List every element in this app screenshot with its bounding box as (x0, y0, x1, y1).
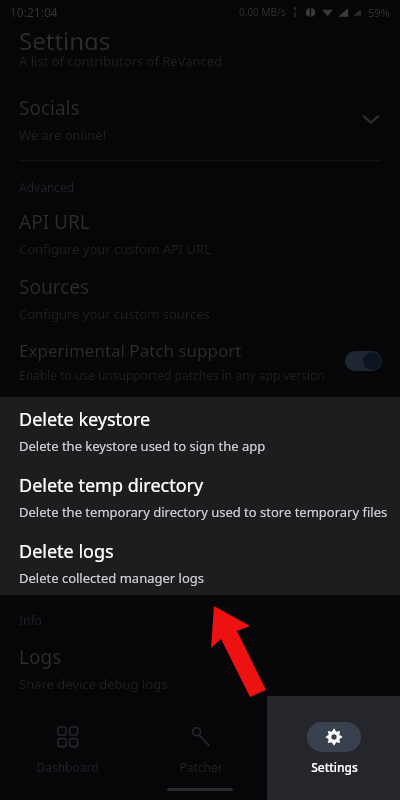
staticText: Enable to use unsupported patches in any… (19, 367, 325, 383)
staticText: Delete keystore (19, 407, 151, 432)
staticText: Patcher (179, 759, 223, 775)
staticText: Sources (19, 274, 90, 300)
button[interactable]: Patcher (134, 696, 267, 800)
staticText: Dashboard (36, 759, 99, 775)
staticText: Delete temp directory (19, 473, 204, 498)
staticText: Configure your custom sources (19, 305, 210, 323)
button[interactable]: Dashboard (0, 696, 134, 800)
staticText: A list of contributors of ReVanced (19, 52, 223, 70)
staticText: Socials (19, 95, 80, 121)
staticText: Delete collected manager logs (19, 569, 204, 587)
button[interactable]: API URL (0, 209, 400, 258)
button[interactable]: Delete logs (0, 539, 400, 587)
staticText: API URL (19, 209, 90, 235)
staticText: 0.00 MB/s (239, 5, 286, 19)
staticText: Experimental Patch support (19, 339, 242, 362)
button[interactable]: Settings (267, 696, 400, 800)
staticText: Info (19, 612, 42, 628)
staticText: Logs (19, 644, 62, 670)
staticText: Delete logs (19, 539, 114, 564)
button[interactable]: Delete temp directory (0, 473, 400, 521)
staticText: Share device debug logs (19, 675, 168, 693)
staticText: Settings (19, 24, 111, 50)
button[interactable]: Socials (0, 88, 400, 150)
button[interactable]: Experimental Patch support (0, 339, 400, 383)
staticText: Configure your custom API URL (19, 240, 212, 258)
button[interactable]: Sources (0, 274, 400, 323)
staticText: We are online! (19, 126, 107, 144)
button[interactable]: Logs (0, 644, 400, 693)
staticText: Settings (311, 759, 358, 775)
staticText: 59% (368, 5, 390, 20)
staticText: Delete the temporary directory used to s… (19, 503, 388, 521)
button[interactable]: Delete keystore (0, 407, 400, 455)
staticText: 10:21:04 (10, 4, 58, 20)
staticText: Advanced (19, 179, 75, 195)
staticText: Delete the keystore used to sign the app (19, 437, 266, 455)
